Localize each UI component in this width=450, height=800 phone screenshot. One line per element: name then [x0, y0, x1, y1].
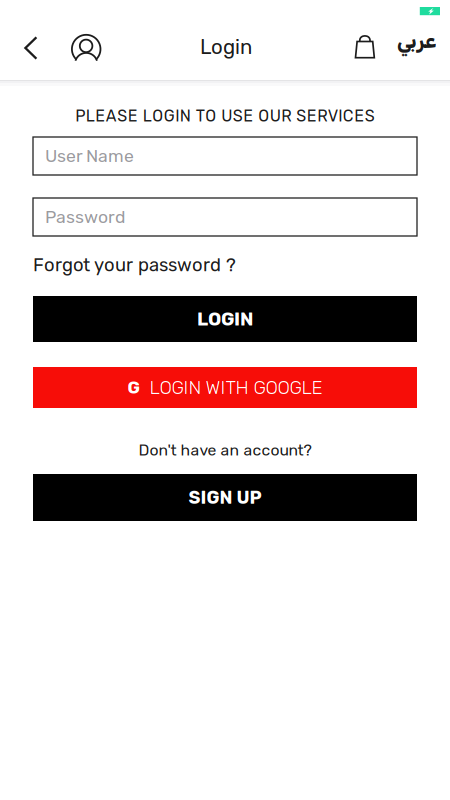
staticText: LOGIN [197, 308, 253, 330]
button[interactable]: LOGIN [33, 296, 417, 342]
staticText: User Name [45, 146, 134, 166]
staticText: Login [200, 35, 252, 59]
button[interactable]: G [33, 367, 417, 408]
staticText: عربي [396, 29, 435, 53]
staticText: LOGIN WITH GOOGLE [149, 376, 322, 399]
staticText: Password [45, 207, 125, 227]
staticText: Don't have an account? [138, 441, 311, 459]
button[interactable]: Forgot your password ? [33, 254, 417, 276]
staticText: PLEASE LOGIN TO USE OUR SERVICES [75, 106, 375, 125]
button[interactable]: Cart [350, 32, 380, 62]
button[interactable]: Account [68, 29, 105, 69]
button[interactable]: SIGN UP [33, 474, 417, 521]
staticText: SIGN UP [188, 487, 261, 508]
staticText: Forgot your password ? [33, 254, 236, 276]
button[interactable]: Back [13, 28, 49, 68]
button[interactable]: عربي [392, 24, 440, 58]
staticText: G [127, 377, 139, 398]
